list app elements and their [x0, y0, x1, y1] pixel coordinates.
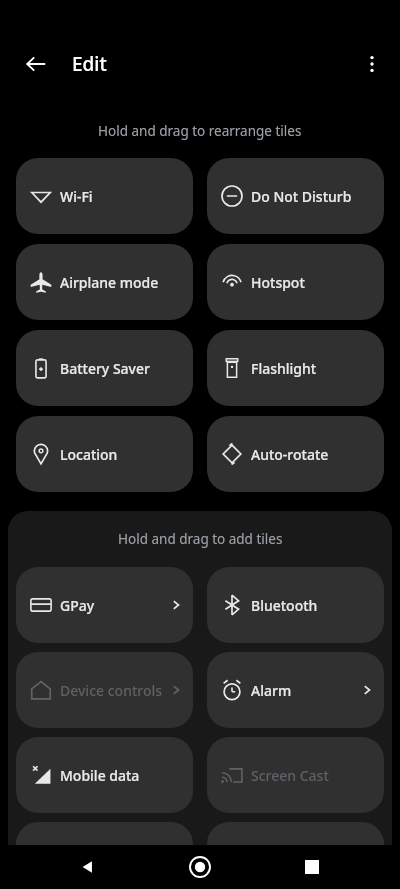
staticText: Hold and drag to rearrange tiles: [98, 122, 302, 140]
button[interactable]: Auto-rotate: [207, 416, 384, 492]
staticText: Battery Saver: [60, 359, 183, 378]
staticText: Auto-rotate: [251, 445, 374, 464]
button[interactable]: Screen Cast: [207, 737, 384, 813]
button[interactable]: Mobile data: [16, 737, 193, 813]
button[interactable]: Back: [18, 46, 54, 82]
button[interactable]: [16, 822, 193, 889]
staticText: Hotspot: [251, 273, 374, 292]
button[interactable]: Bluetooth: [207, 567, 384, 643]
button[interactable]: More options: [354, 46, 390, 82]
button[interactable]: Hotspot: [207, 244, 384, 320]
button[interactable]: GPay: [16, 567, 193, 643]
staticText: GPay: [60, 596, 169, 615]
button[interactable]: Recents: [288, 845, 336, 889]
button[interactable]: Wi-Fi: [16, 158, 193, 234]
button[interactable]: Do Not Disturb: [207, 158, 384, 234]
staticText: Screen Cast: [251, 766, 374, 785]
staticText: Flashlight: [251, 359, 374, 378]
button[interactable]: Home: [176, 845, 224, 889]
button[interactable]: Device controls: [16, 652, 193, 728]
button[interactable]: Airplane mode: [16, 244, 193, 320]
staticText: Alarm: [251, 681, 360, 700]
staticText: Location: [60, 445, 183, 464]
button[interactable]: Battery Saver: [16, 330, 193, 406]
button[interactable]: Back: [64, 845, 112, 889]
button[interactable]: Location: [16, 416, 193, 492]
staticText: Hold and drag to add tiles: [118, 530, 283, 548]
button[interactable]: [207, 822, 384, 889]
staticText: Mobile data: [60, 766, 183, 785]
staticText: Wi-Fi: [60, 187, 183, 206]
staticText: Device controls: [60, 681, 169, 700]
staticText: Edit: [72, 51, 107, 77]
button[interactable]: Flashlight: [207, 330, 384, 406]
staticText: Airplane mode: [60, 273, 183, 292]
staticText: Do Not Disturb: [251, 187, 374, 206]
staticText: Bluetooth: [251, 596, 374, 615]
button[interactable]: Alarm: [207, 652, 384, 728]
